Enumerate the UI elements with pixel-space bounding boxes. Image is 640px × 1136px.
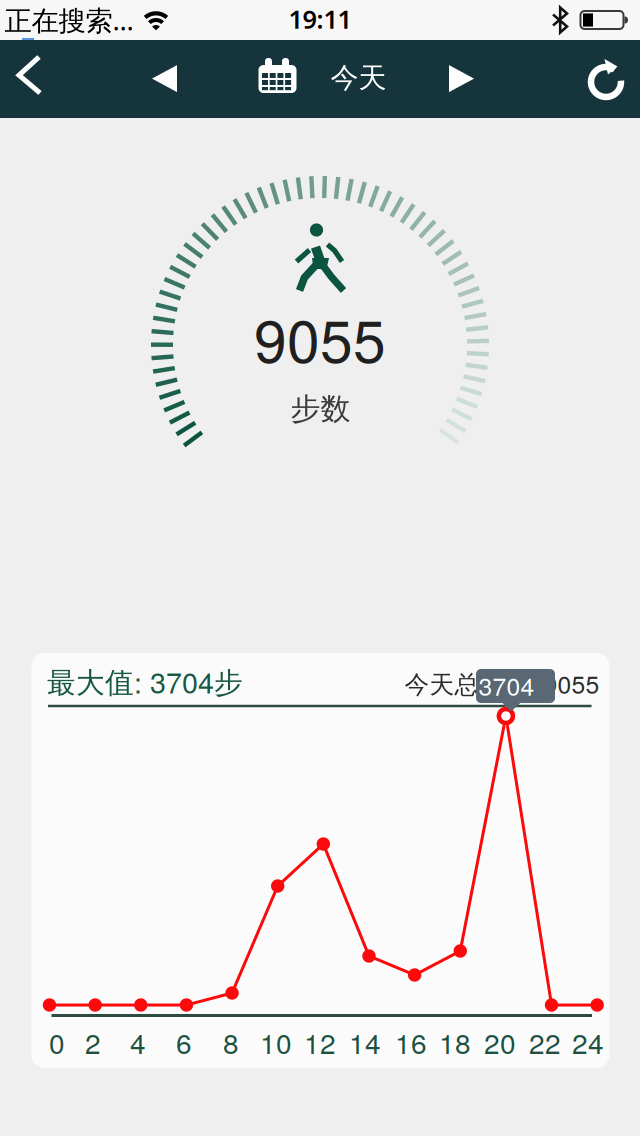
staticText: 8 bbox=[223, 1022, 239, 1062]
staticText: 12 bbox=[304, 1022, 336, 1062]
staticText: 步数 bbox=[290, 390, 350, 428]
button[interactable]: Back bbox=[7, 55, 51, 99]
staticText: 最大值: 3704步 bbox=[47, 660, 243, 702]
staticText: 22 bbox=[529, 1022, 561, 1062]
staticText: 3704 bbox=[478, 667, 534, 703]
staticText: 10 bbox=[260, 1022, 292, 1062]
staticText: 0 bbox=[49, 1022, 65, 1062]
button[interactable]: 选择日期 bbox=[257, 58, 386, 98]
staticText: 20 bbox=[484, 1022, 516, 1062]
staticText: 6 bbox=[176, 1022, 192, 1062]
staticText: 24 bbox=[572, 1022, 604, 1062]
staticText: 18 bbox=[439, 1022, 471, 1062]
button[interactable]: Next day bbox=[436, 55, 484, 103]
staticText: 16 bbox=[395, 1022, 427, 1062]
staticText: 4 bbox=[130, 1022, 146, 1062]
staticText: 2 bbox=[85, 1022, 101, 1062]
staticText: 今天总步数: 9055 bbox=[404, 665, 599, 701]
button[interactable]: 刷新 bbox=[579, 54, 633, 108]
staticText: 9055 bbox=[254, 295, 386, 379]
staticText: 14 bbox=[349, 1022, 381, 1062]
staticText: 今天 bbox=[330, 60, 386, 96]
staticText: 19:11 bbox=[288, 2, 351, 36]
button[interactable]: Previous day bbox=[141, 55, 189, 103]
staticText: 正在搜索... bbox=[4, 1, 133, 39]
